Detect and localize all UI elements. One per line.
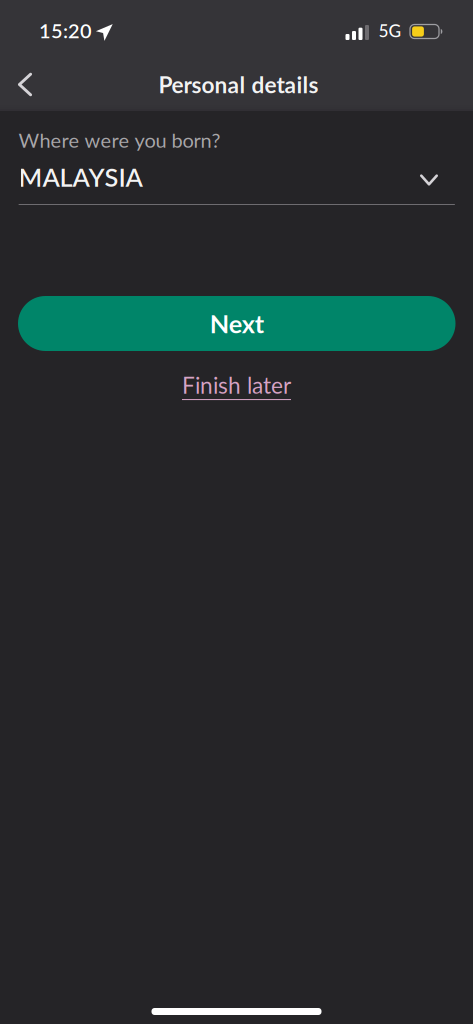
staticText: Next [210,308,264,339]
staticText: Personal details [158,71,318,98]
button[interactable]: Back [3,62,47,106]
staticText: 5G [378,20,401,41]
button[interactable]: MALAYSIA [18,166,455,188]
button[interactable]: Next [18,296,455,351]
staticText: MALAYSIA [18,162,142,192]
staticText: Finish later [182,371,291,399]
staticText: 15:20 [39,18,92,42]
button[interactable]: Finish later [182,370,291,400]
staticText: Where were you born? [18,128,220,152]
